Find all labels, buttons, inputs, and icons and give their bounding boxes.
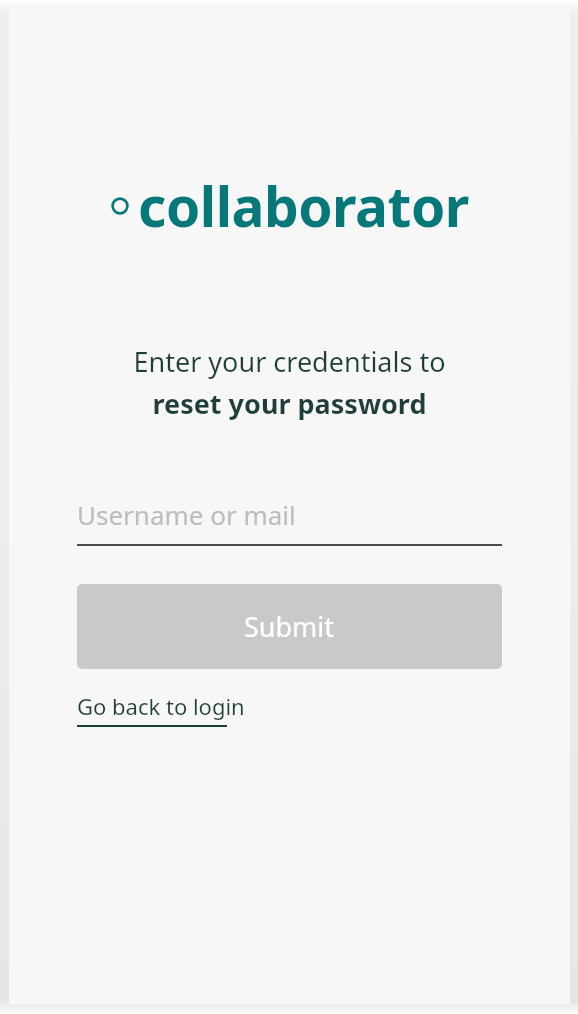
staticText: Enter your credentials to reset your pas…	[9, 343, 570, 422]
button[interactable]: Username or mail	[77, 482, 502, 546]
staticText: Submit	[244, 608, 335, 645]
staticText: Username or mail	[77, 497, 296, 532]
staticText: Go back to login	[77, 691, 245, 721]
button[interactable]: Submit	[77, 584, 502, 669]
button[interactable]: Go back to login	[77, 691, 245, 727]
other: Collaborator logo	[111, 197, 129, 215]
staticText: collaborator	[138, 168, 469, 243]
